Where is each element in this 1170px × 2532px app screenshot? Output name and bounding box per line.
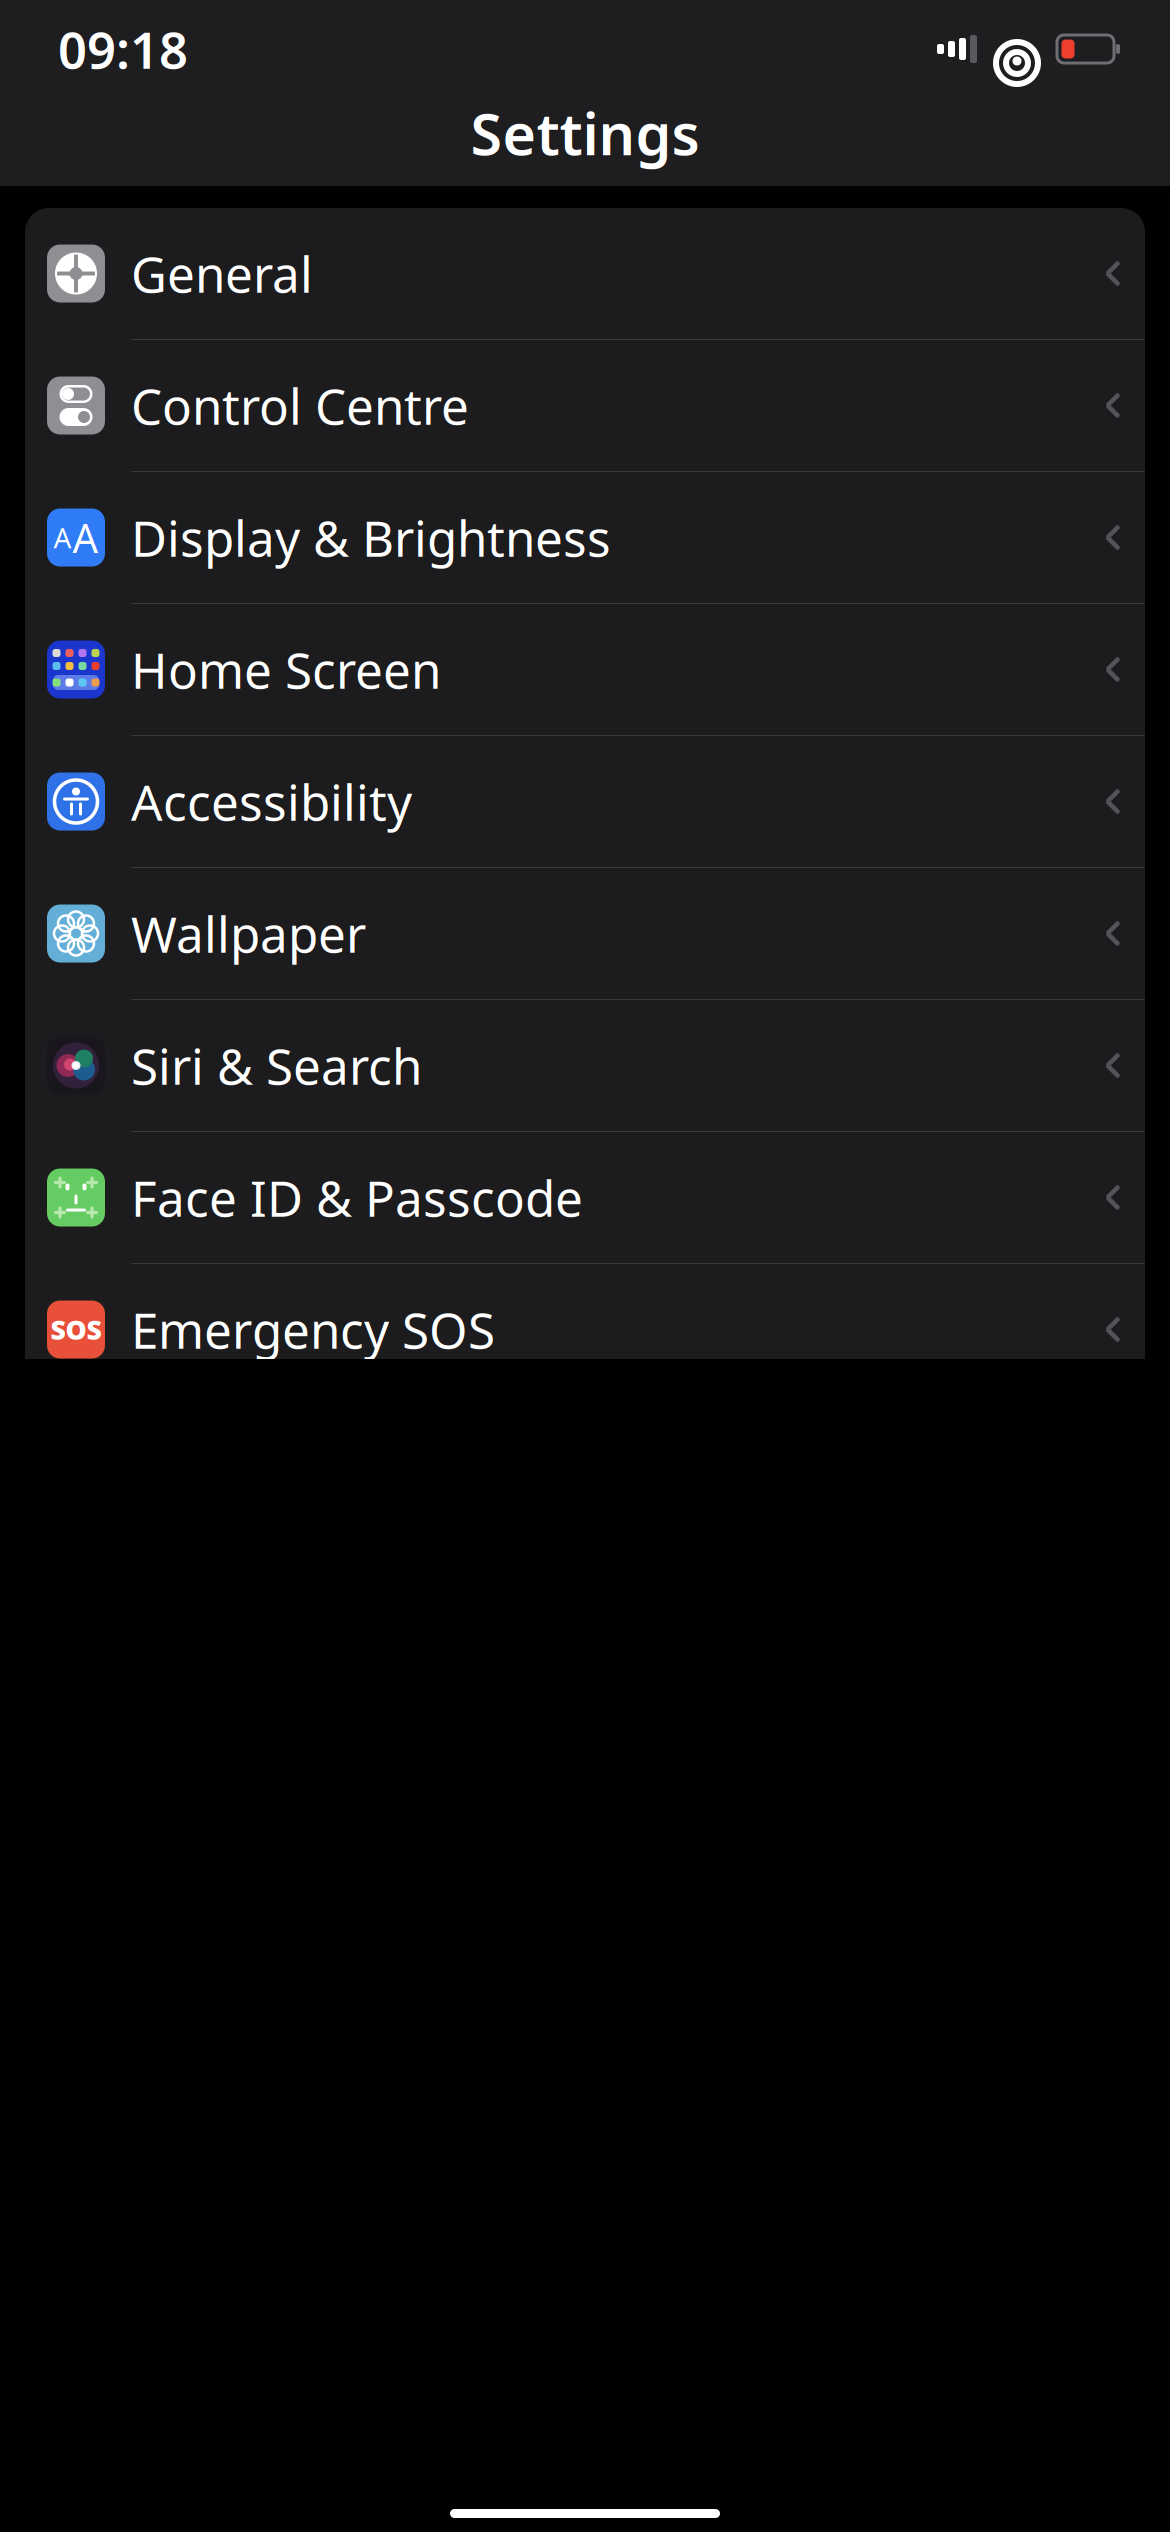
staticText: Emergency SOS — [131, 1297, 495, 1362]
button[interactable]: Accessibility — [25, 736, 1145, 867]
staticText: 09:18 — [58, 15, 188, 83]
button[interactable]: Control Centre — [25, 340, 1145, 471]
button[interactable]: A — [25, 472, 1145, 603]
staticText: General — [131, 241, 313, 306]
button[interactable]: SOS — [25, 1264, 1145, 1395]
button[interactable]: Wallpaper — [25, 868, 1145, 999]
button[interactable]: Siri & Search — [25, 1000, 1145, 1131]
staticText: A — [53, 519, 71, 556]
staticText: Accessibility — [131, 769, 412, 834]
staticText: SOS — [50, 1312, 101, 1347]
staticText: A — [72, 511, 98, 564]
button[interactable]: Home Screen — [25, 604, 1145, 735]
staticText: Control Centre — [131, 373, 469, 438]
button[interactable]: General — [25, 208, 1145, 339]
staticText: Siri & Search — [131, 1033, 422, 1098]
button[interactable]: Face ID & Passcode — [25, 1132, 1145, 1263]
staticText: Display & Brightness — [131, 505, 611, 570]
staticText: Wallpaper — [131, 901, 366, 966]
staticText: Settings — [470, 95, 699, 171]
staticText: Face ID & Passcode — [131, 1165, 583, 1230]
staticText: Home Screen — [131, 637, 441, 702]
